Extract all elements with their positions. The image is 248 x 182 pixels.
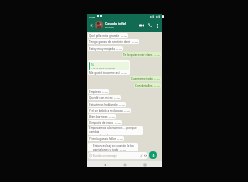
staticText: Te lo quiero ver claro [123,53,153,57]
staticText: Empezamos a besarnos ... porque cambia [89,126,142,134]
staticText: Estoy muy mojada [89,47,115,51]
staticText: Quedé con mi ex [89,96,113,100]
button[interactable]: Quedé con mi ex [88,95,121,100]
button[interactable]: Qué pilla más grande [88,33,128,38]
button[interactable]: Bien barrioss [88,114,116,119]
button[interactable]: Después de esoo [88,120,122,125]
button[interactable]: Estuvimos hablando [88,102,126,107]
staticText: Entonces baj se cuando le ba [93,144,134,148]
staticText: 21:05 [121,35,127,38]
button[interactable]: Con detalles [134,83,161,88]
button[interactable]: Escribe un mensaje [88,152,148,159]
button[interactable]: Video call [138,22,144,28]
button[interactable]: Entonces baj se cuando le ba [88,143,138,152]
staticText: 21:05 [115,122,121,125]
staticText: en línea [105,26,114,29]
staticText: 21:05 [102,91,108,94]
button[interactable]: Tengo ganas de sentirte dent [88,39,139,44]
staticText: 21:05 [120,149,126,152]
button[interactable]: Empiezo [88,89,109,94]
button[interactable]: Y el se bebió a mi bocaa [88,108,131,113]
button[interactable]: Back [89,23,94,28]
staticText: pantalones y todo [93,148,119,152]
staticText: 11:42 [89,15,96,18]
staticText: 21:05 [124,110,130,113]
button[interactable]: Back [102,162,107,167]
staticText: Con detalles [135,84,153,88]
staticText: Tú [91,63,94,66]
staticText: Y tenía ganas follar [89,137,116,141]
button[interactable]: Cuenteme todo [130,76,161,81]
staticText: Escribe un mensaje [93,154,117,158]
staticText: Tengo ganas de sentirte dent [89,40,131,44]
button[interactable]: More options [155,23,160,28]
staticText: 21:05 [132,41,138,44]
button[interactable]: Tú [88,60,130,75]
staticText: 21:05 [114,97,120,100]
staticText: Y el se bebió a mi bocaa [89,109,123,113]
staticText: 21:05 [109,116,115,119]
button[interactable]: Y tenía ganas follar [88,136,124,141]
staticText: muy cachonda [89,134,110,135]
staticText: Y yo lo tenía a mientes [91,67,116,70]
staticText: Casada infiel [105,21,127,26]
staticText: 21:05 [121,72,127,75]
staticText: Qué pilla más grande [89,34,120,38]
staticText: 21:05 [116,48,122,51]
staticText: Bien barrioss [89,115,108,119]
button[interactable]: Home [122,162,127,167]
staticText: Estuvimos hablando [89,103,118,107]
staticText: 21:05 [119,104,125,107]
staticText: 21:05 [117,138,123,141]
staticText: 21:05 [154,85,160,88]
staticText: Me gustó tocarme así [89,71,120,75]
staticText: Después de esoo [89,121,114,125]
button[interactable]: Record voice message [149,151,157,159]
staticText: Empiezo [89,90,101,94]
button[interactable]: Estoy muy mojada [88,46,123,51]
button[interactable]: Empezamos a besarnos ... porque cambia [88,126,143,135]
button[interactable]: Voice call [147,22,153,28]
button[interactable]: Te lo quiero ver claro [122,52,161,57]
button[interactable]: Recents [142,162,147,167]
staticText: 21:05 [154,54,160,57]
staticText: 21:05 [154,78,160,81]
staticText: Cuenteme todo [131,77,153,81]
